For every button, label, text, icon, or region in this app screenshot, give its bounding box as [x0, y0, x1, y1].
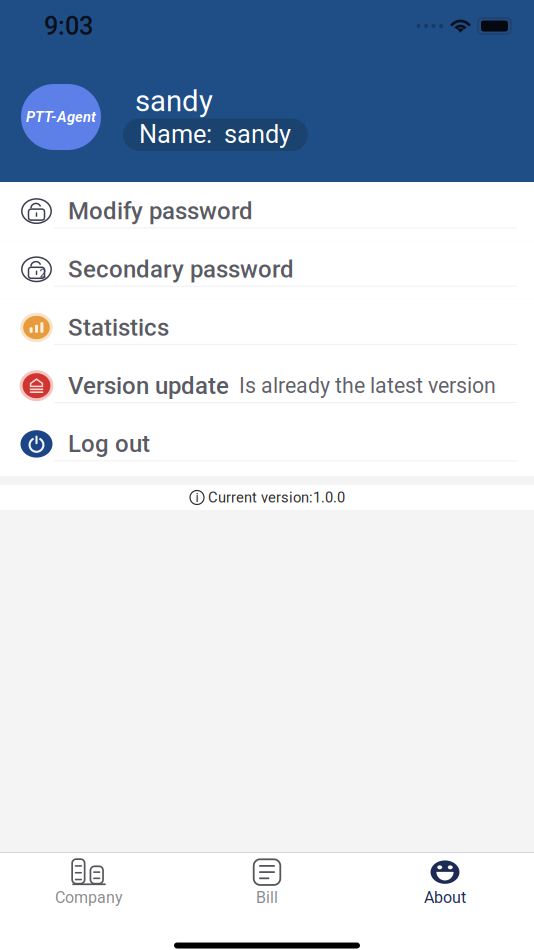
staticText: Log out [68, 430, 150, 458]
staticText: PTT-Agent [26, 108, 96, 126]
staticText: Name: sandy [139, 119, 291, 149]
staticText: About [424, 888, 466, 907]
staticText: 2 [39, 266, 46, 280]
staticText: i [195, 490, 198, 505]
staticText: Company [55, 888, 123, 907]
staticText: 9:03 [44, 11, 93, 41]
staticText: Version update [68, 372, 229, 400]
staticText: Current version:1.0.0 [208, 489, 345, 506]
button[interactable]: Statistics [0, 298, 534, 357]
button[interactable]: 2 [0, 240, 534, 298]
staticText: Secondary password [68, 255, 294, 283]
staticText: Bill [256, 888, 278, 907]
staticText: Is already the latest version [239, 373, 496, 398]
staticText: Modify password [68, 197, 253, 225]
button[interactable]: Log out [0, 415, 534, 473]
button[interactable]: Version update [0, 357, 534, 415]
button[interactable]: About [356, 851, 534, 913]
button[interactable]: Bill [178, 851, 356, 913]
button[interactable]: Modify password [0, 182, 534, 240]
staticText: sandy [135, 84, 213, 118]
staticText: Statistics [68, 313, 169, 341]
button[interactable]: Company [0, 851, 178, 913]
